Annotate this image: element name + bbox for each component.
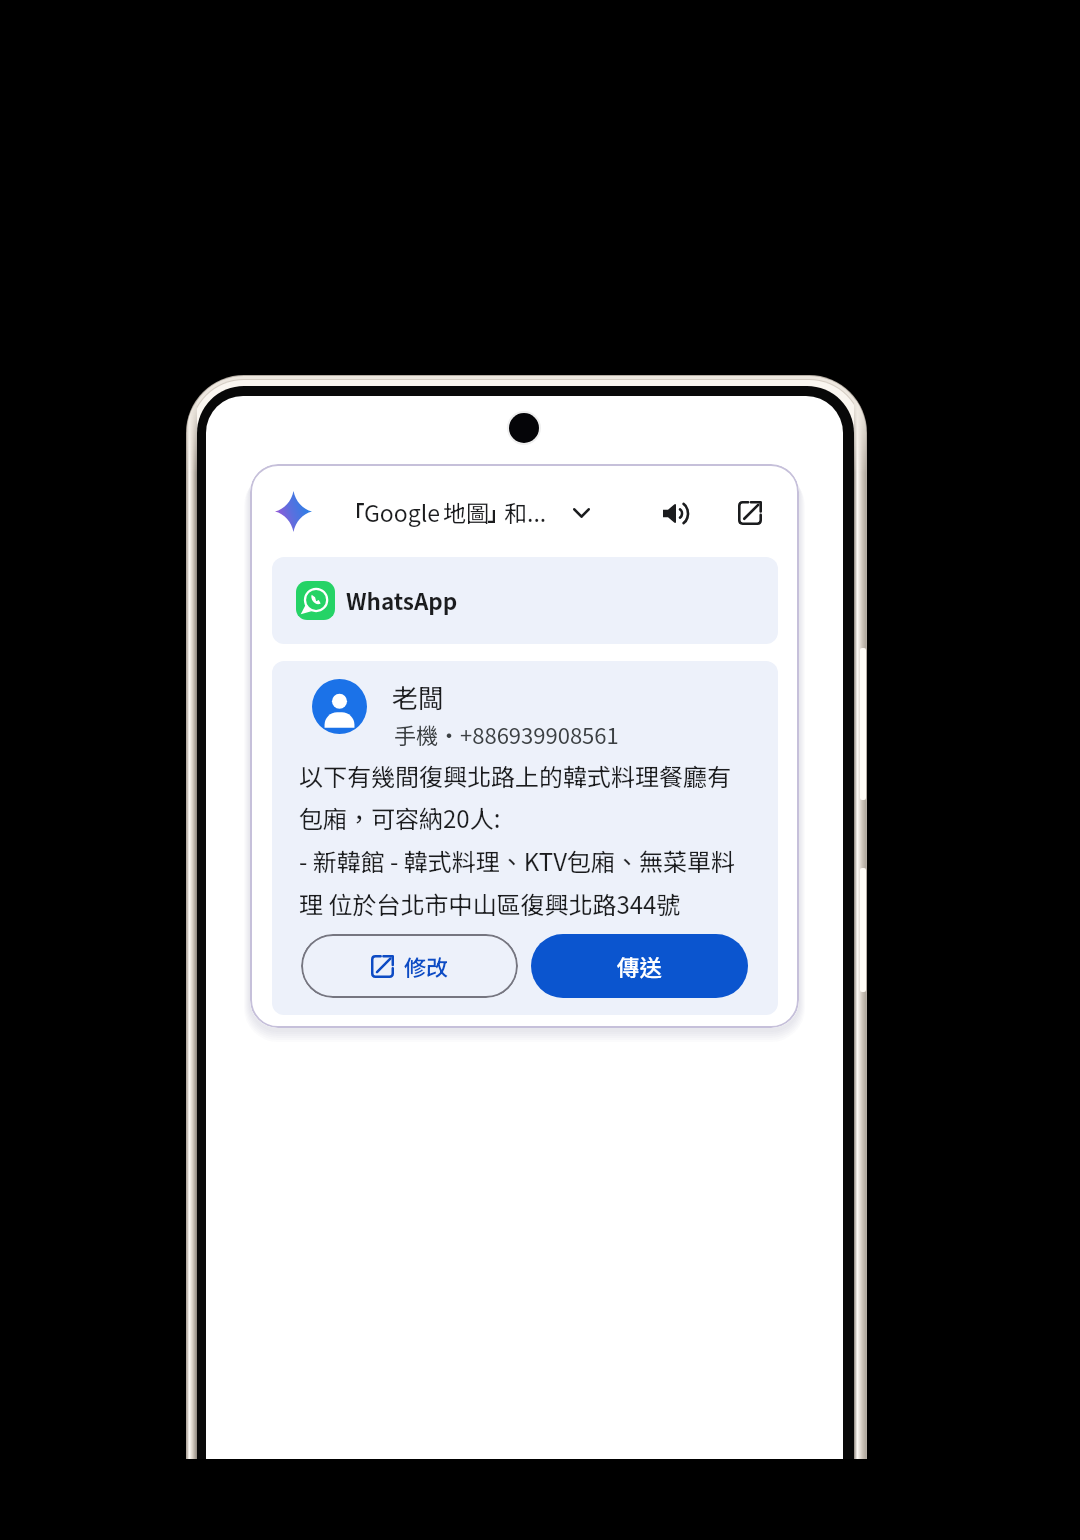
button[interactable]: WhatsApp — [272, 557, 778, 644]
button[interactable]: Expand — [560, 492, 602, 534]
button[interactable]: Send — [531, 934, 748, 998]
staticText: 以下有幾間復興北路上的韓式料理餐廳有包廂，可容納20人: - 新韓館 - 韓式料… — [299, 758, 739, 921]
staticText: 和... — [504, 495, 547, 528]
staticText: 老闆 — [392, 678, 445, 716]
button[interactable]: Open in new window — [728, 491, 772, 535]
staticText: Google — [364, 495, 440, 528]
staticText: 傳送 — [617, 950, 663, 983]
staticText: 修改 — [404, 950, 449, 982]
staticText: 地圖 — [443, 495, 489, 528]
staticText: WhatsApp — [346, 584, 458, 617]
button[interactable]: Edit message — [301, 934, 518, 998]
button[interactable]: Read aloud — [653, 491, 697, 535]
staticText: 手機・+886939908561 — [394, 718, 619, 750]
